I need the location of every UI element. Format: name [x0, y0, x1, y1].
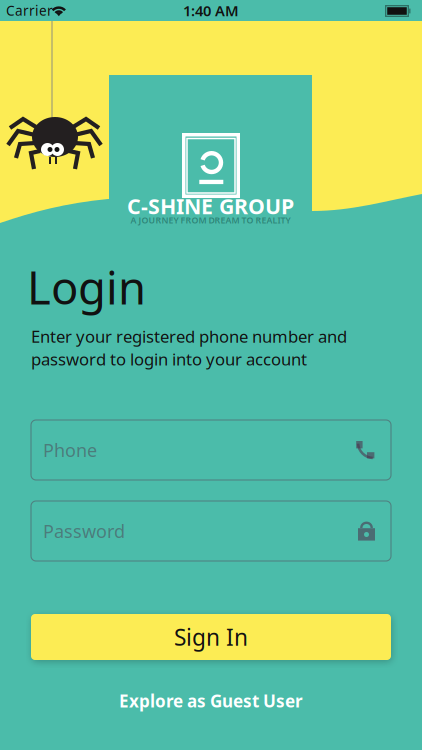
staticText: Login: [27, 256, 146, 318]
staticText: C-SHINE GROUP: [127, 192, 294, 220]
staticText: Explore as Guest User: [119, 689, 303, 713]
button[interactable]: Sign In: [31, 614, 391, 660]
staticText: A JOURNEY FROM DREAM TO REALITY: [130, 214, 290, 226]
staticText: 1:40 AM: [183, 0, 239, 20]
staticText: Enter your registered phone number and p…: [31, 325, 347, 370]
staticText: Carrier: [6, 1, 53, 20]
staticText: Phone: [43, 438, 97, 462]
button[interactable]: Explore as Guest User: [31, 688, 391, 714]
staticText: Sign In: [174, 622, 248, 652]
staticText: Password: [43, 519, 125, 543]
